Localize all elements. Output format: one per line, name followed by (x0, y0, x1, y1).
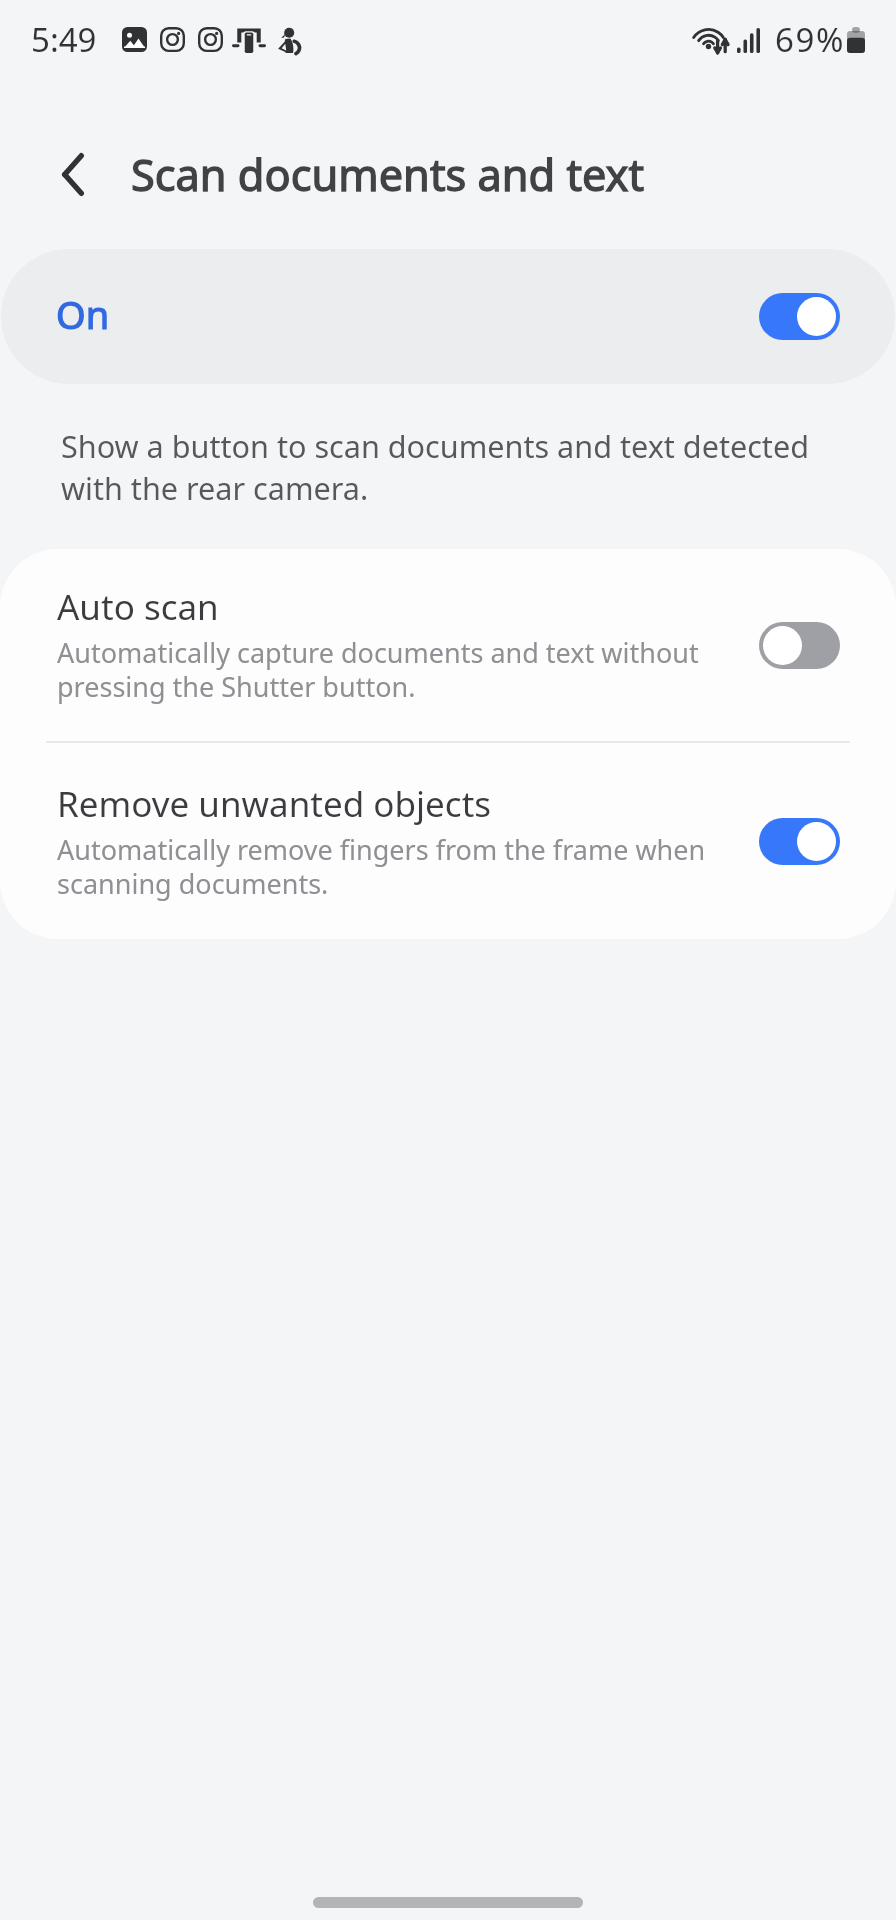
button[interactable]: Remove unwanted objects, on (759, 818, 840, 865)
button[interactable]: Back (37, 138, 109, 210)
staticText: Remove unwanted objects (57, 780, 492, 828)
staticText: 5:49 (31, 17, 97, 62)
staticText: Automatically capture documents and text… (57, 634, 706, 705)
staticText: Show a button to scan documents and text… (61, 425, 838, 509)
staticText: On (56, 288, 110, 340)
button[interactable]: Scan documents and text, on (759, 293, 840, 340)
staticText: Auto scan (57, 583, 219, 631)
button[interactable]: Auto scan, off (759, 622, 840, 669)
staticText: Scan documents and text (131, 145, 645, 204)
staticText: 69% (775, 17, 845, 62)
button[interactable]: On (1, 249, 895, 384)
button[interactable]: Remove unwanted objects (0, 743, 896, 939)
button[interactable]: Auto scan (0, 549, 896, 741)
staticText: Automatically remove fingers from the fr… (57, 831, 706, 902)
